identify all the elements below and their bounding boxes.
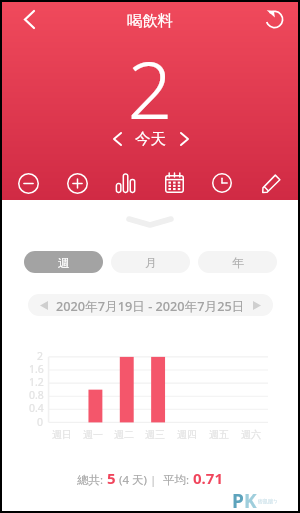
button[interactable]: Back	[16, 6, 42, 32]
staticText: K	[244, 488, 257, 513]
button[interactable]: History	[209, 170, 235, 196]
staticText: 2	[37, 349, 44, 362]
staticText: 痞凱踹ㄅ	[258, 498, 279, 504]
button[interactable]: 月	[111, 251, 190, 273]
staticText: 5	[107, 468, 116, 488]
staticText: 0.4	[29, 401, 44, 414]
staticText: 2	[2, 35, 298, 143]
staticText: P	[232, 488, 244, 513]
button[interactable]: Calendar	[161, 170, 187, 196]
button[interactable]: Increase	[64, 170, 90, 196]
button[interactable]: Previous week	[34, 295, 54, 315]
staticText: 月	[145, 255, 157, 270]
staticText: 0.71	[193, 468, 223, 488]
staticText: 週五	[209, 428, 229, 441]
staticText: 年	[232, 255, 244, 270]
button[interactable]: Edit	[258, 170, 284, 196]
staticText: 週三	[145, 428, 165, 441]
staticText: 週一	[83, 428, 103, 441]
staticText: 週日	[52, 428, 72, 441]
staticText: 0.8	[29, 388, 44, 401]
button[interactable]: Next week	[247, 295, 267, 315]
button[interactable]: 年	[198, 251, 277, 273]
staticText: (4 天)	[116, 472, 150, 488]
staticText: 喝飲料	[2, 11, 298, 31]
staticText: 週四	[177, 428, 197, 441]
staticText: |	[150, 472, 160, 488]
staticText: 1.6	[29, 362, 44, 375]
button[interactable]: Reset	[261, 6, 287, 32]
staticText: 總共:	[77, 472, 107, 488]
staticText: 1.2	[29, 375, 44, 388]
button[interactable]: Statistics	[112, 170, 138, 196]
staticText: 週六	[241, 428, 261, 441]
staticText: 週	[58, 255, 70, 270]
button[interactable]: Previous day	[106, 128, 128, 150]
button[interactable]: Next day	[173, 128, 195, 150]
staticText: 0	[37, 415, 44, 428]
staticText: 2020年7月19日 - 2020年7月25日	[56, 297, 245, 314]
staticText: 今天	[135, 129, 166, 149]
staticText: 週二	[114, 428, 134, 441]
button[interactable]: Decrease	[15, 170, 41, 196]
button[interactable]: 週	[24, 251, 103, 273]
staticText: 平均:	[160, 472, 193, 488]
